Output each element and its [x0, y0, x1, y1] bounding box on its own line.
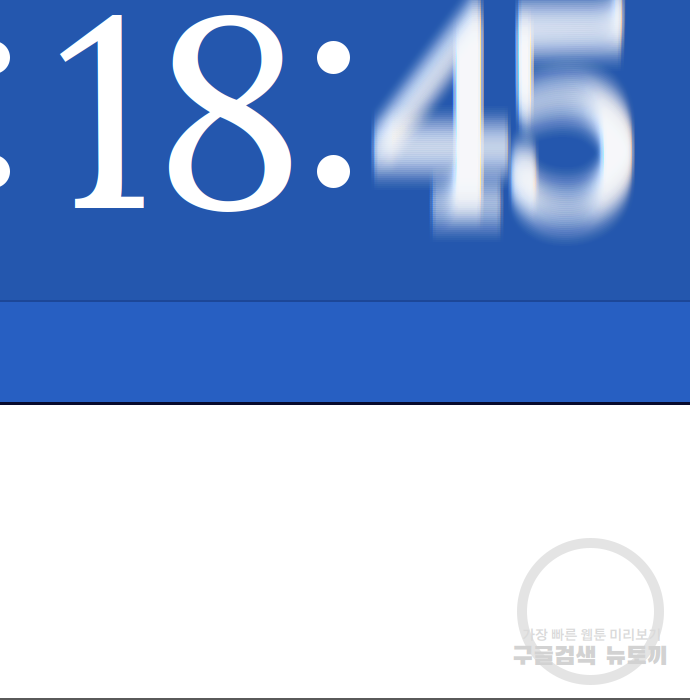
staticText: 4: [371, 0, 517, 264]
staticText: 4: [374, 0, 520, 250]
staticText: 4: [374, 0, 520, 260]
staticText: 5: [500, 0, 647, 284]
staticText: 5: [497, 0, 644, 272]
staticText: 5: [497, 0, 644, 274]
staticText: 5: [494, 0, 641, 280]
staticText: 4: [374, 0, 520, 266]
staticText: 4: [374, 0, 520, 294]
staticText: 5: [497, 0, 644, 304]
staticText: 4: [371, 0, 517, 262]
staticText: 4: [371, 0, 517, 252]
staticText: 5: [500, 0, 647, 310]
staticText: 4: [374, 0, 520, 284]
staticText: 5: [494, 0, 641, 306]
staticText: 5: [494, 0, 641, 302]
staticText: 4: [368, 0, 514, 290]
staticText: 4: [374, 0, 520, 314]
staticText: 5: [500, 0, 647, 260]
staticText: 4: [371, 0, 517, 294]
staticText: 4: [371, 0, 517, 308]
staticText: 4: [371, 0, 517, 300]
staticText: 4: [368, 0, 514, 252]
staticText: 5: [494, 0, 641, 290]
staticText: 4: [368, 0, 514, 296]
staticText: 5: [500, 0, 647, 286]
staticText: 4: [371, 0, 517, 312]
staticText: 4: [374, 0, 520, 268]
staticText: 4: [368, 0, 514, 316]
staticText: 5: [497, 0, 644, 310]
staticText: 5: [494, 0, 641, 294]
staticText: 4: [368, 0, 514, 280]
staticText: 5: [497, 0, 644, 284]
staticText: 5: [494, 0, 641, 282]
staticText: 4: [368, 0, 514, 292]
staticText: 5: [497, 0, 644, 250]
staticText: 5: [497, 0, 644, 286]
staticText: 5: [500, 0, 647, 250]
staticText: 5: [500, 0, 647, 278]
staticText: 4: [374, 0, 520, 302]
staticText: 5: [494, 0, 641, 288]
staticText: 5: [497, 0, 644, 280]
staticText: 4: [368, 0, 514, 298]
staticText: 4: [371, 0, 517, 250]
staticText: 5: [500, 0, 647, 254]
staticText: 5: [500, 0, 647, 302]
staticText: 5: [500, 0, 647, 314]
staticText: 4: [368, 0, 514, 262]
staticText: 5: [500, 0, 647, 304]
staticText: 4: [371, 0, 517, 316]
staticText: 4: [371, 0, 517, 288]
staticText: 5: [500, 0, 647, 312]
staticText: 4: [371, 0, 517, 314]
staticText: 5: [497, 0, 644, 312]
staticText: 5: [500, 0, 647, 296]
staticText: 5: [494, 0, 641, 308]
staticText: 4: [371, 0, 517, 298]
staticText: 5: [500, 0, 647, 276]
staticText: 5: [494, 0, 641, 262]
staticText: 4: [374, 0, 520, 304]
staticText: 4: [374, 0, 520, 296]
staticText: 5: [494, 0, 641, 304]
staticText: 5: [497, 0, 644, 296]
staticText: 5: [497, 0, 644, 294]
staticText: 5: [500, 0, 647, 298]
staticText: 5: [500, 0, 647, 294]
staticText: 4: [368, 0, 514, 302]
staticText: 5: [494, 0, 641, 250]
staticText: 5: [494, 0, 641, 310]
staticText: 5: [497, 0, 644, 266]
staticText: 4: [374, 0, 520, 274]
staticText: 4: [368, 0, 514, 264]
staticText: 4: [374, 0, 520, 292]
staticText: 4: [374, 0, 520, 288]
staticText: 4: [371, 0, 517, 286]
staticText: 5: [500, 0, 647, 266]
staticText: 5: [500, 0, 647, 270]
staticText: 4: [374, 0, 520, 286]
staticText: 5: [497, 0, 644, 260]
staticText: 5: [494, 0, 641, 300]
staticText: 5: [494, 0, 641, 286]
staticText: 4: [374, 0, 520, 270]
staticText: 5: [494, 0, 641, 268]
staticText: 4: [371, 0, 517, 304]
staticText: 18: [55, 0, 304, 282]
staticText: 5: [497, 0, 644, 256]
staticText: 5: [500, 0, 647, 252]
staticText: 5: [500, 0, 647, 256]
staticText: 5: [494, 0, 641, 256]
staticText: 4: [371, 0, 517, 278]
staticText: 5: [500, 0, 647, 262]
staticText: 5: [494, 0, 641, 260]
staticText: 4: [368, 0, 514, 314]
staticText: 4: [374, 0, 520, 262]
staticText: 5: [500, 0, 647, 288]
staticText: 4: [374, 0, 520, 258]
staticText: 4: [368, 0, 514, 254]
staticText: 4: [374, 0, 520, 276]
staticText: 5: [494, 0, 641, 258]
staticText: 5: [500, 0, 647, 308]
